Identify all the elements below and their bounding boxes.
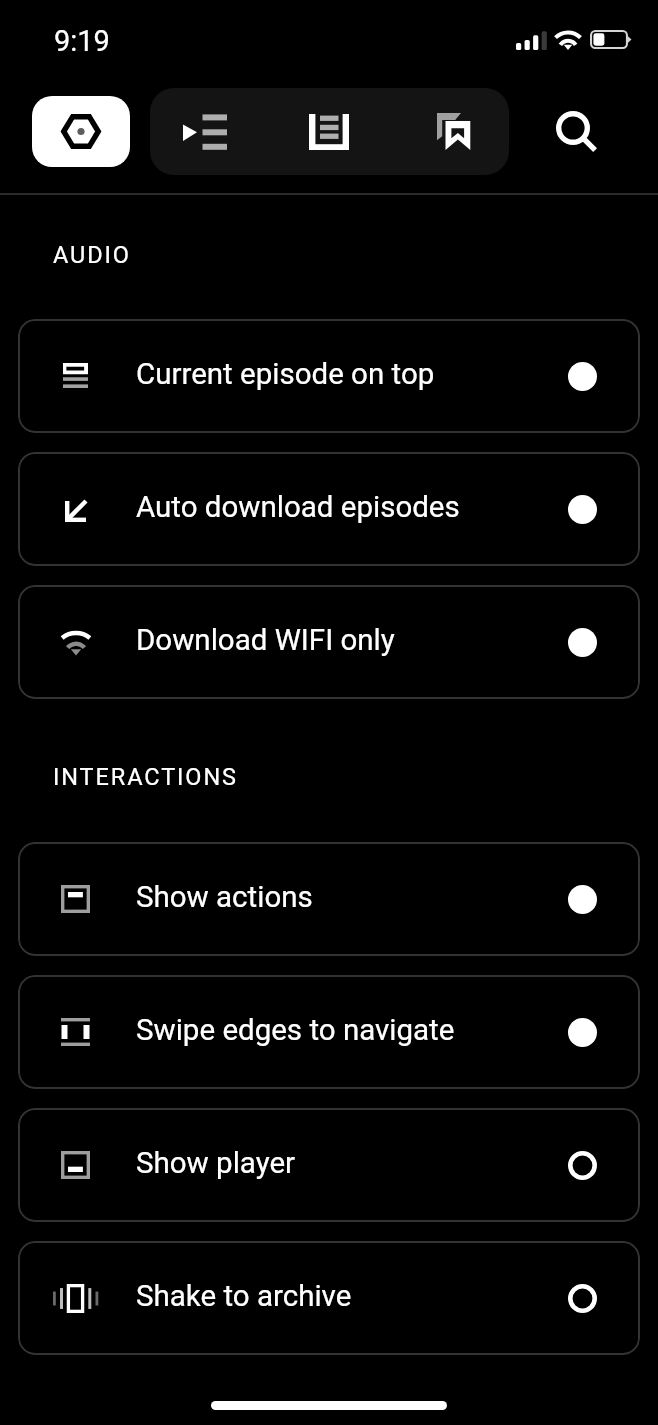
staticText: Shake to archive xyxy=(136,1279,568,1314)
button[interactable]: Auto download episodes xyxy=(18,452,640,566)
button[interactable]: Shake to archive xyxy=(18,1241,640,1355)
staticText: Current episode on top xyxy=(136,357,568,392)
staticText: AUDIO xyxy=(53,241,131,269)
button[interactable]: Up Next xyxy=(150,88,260,175)
button[interactable]: Episodes xyxy=(274,88,384,175)
button[interactable]: Discover xyxy=(32,96,130,167)
staticText: 9:19 xyxy=(54,24,110,58)
staticText: Download WIFI only xyxy=(136,623,568,658)
button[interactable]: Show player xyxy=(18,1108,640,1222)
button[interactable]: Current episode on top xyxy=(18,319,640,433)
button[interactable]: Download WIFI only xyxy=(18,585,640,699)
staticText: Show player xyxy=(136,1146,568,1181)
button[interactable]: Search xyxy=(539,94,613,168)
staticText: Show actions xyxy=(136,880,568,915)
staticText: INTERACTIONS xyxy=(53,763,238,791)
staticText: Auto download episodes xyxy=(136,490,568,525)
button[interactable]: Swipe edges to navigate xyxy=(18,975,640,1089)
button[interactable]: Bookmarks xyxy=(398,88,509,175)
button[interactable]: Show actions xyxy=(18,842,640,956)
staticText: Swipe edges to navigate xyxy=(136,1013,568,1048)
